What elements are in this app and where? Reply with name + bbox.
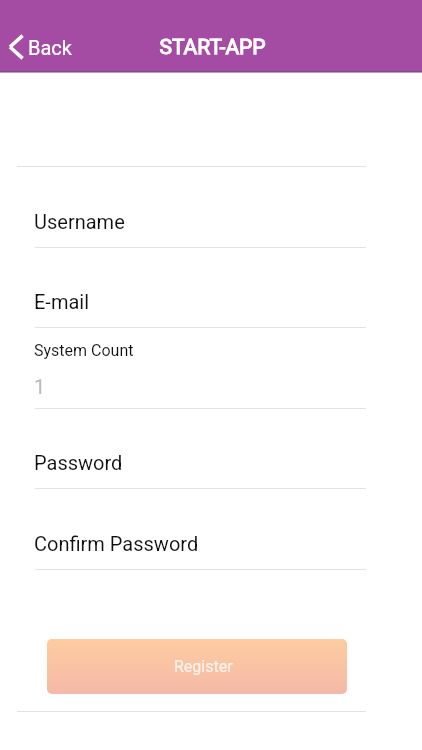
staticText: 1 — [34, 375, 46, 398]
staticText: Back — [28, 36, 72, 59]
staticText: E-mail — [34, 290, 90, 313]
button[interactable]: Register — [47, 639, 347, 694]
staticText: Register — [174, 657, 233, 676]
staticText: Confirm Password — [34, 532, 199, 555]
staticText: System Count — [34, 341, 134, 360]
staticText: Password — [34, 451, 123, 474]
button[interactable]: Back — [4, 30, 75, 64]
staticText: Username — [34, 210, 125, 233]
staticText: START-APP — [159, 35, 266, 60]
